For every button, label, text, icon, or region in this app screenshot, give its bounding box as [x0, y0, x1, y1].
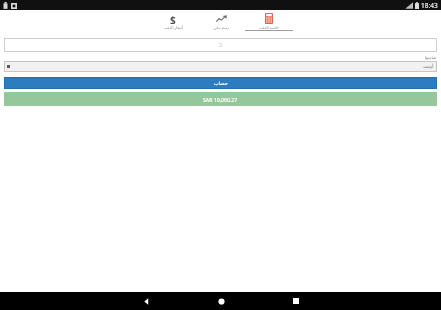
button[interactable]: Gold prices tab: [149, 10, 197, 31]
staticText: أسعار الذهب: [164, 25, 183, 30]
staticText: 18:43: [421, 1, 438, 10]
button[interactable]: حساب: [4, 77, 437, 89]
staticText: $: [170, 13, 176, 24]
staticText: 2: [219, 41, 223, 49]
staticText: حاسبة الذهب: [259, 25, 279, 30]
staticText: قياسها: [4, 55, 436, 60]
button[interactable]: Recent apps: [286, 292, 306, 310]
staticText: رسم بياني: [213, 25, 229, 30]
button[interactable]: Home: [211, 292, 231, 310]
button[interactable]: Gold calculator tab: [245, 10, 293, 31]
button[interactable]: SAR 10,060.27: [4, 92, 437, 106]
button[interactable]: Chart tab: [197, 10, 245, 31]
button[interactable]: Unit selector dropdown: [4, 61, 437, 72]
button[interactable]: Amount input: [4, 38, 437, 52]
staticText: حساب: [214, 80, 228, 86]
button[interactable]: Back: [136, 292, 156, 310]
staticText: أونصة: [423, 64, 434, 69]
staticText: SAR 10,060.27: [203, 96, 238, 103]
